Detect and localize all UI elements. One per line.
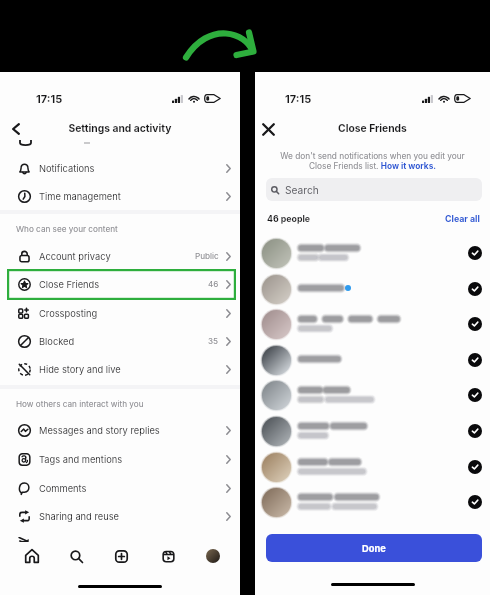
staticText: Time management	[39, 191, 121, 202]
button[interactable]: Home	[21, 545, 43, 567]
button[interactable]	[255, 449, 490, 485]
staticText: Public	[195, 251, 219, 261]
button[interactable]	[255, 377, 490, 413]
button[interactable]: Close Friends	[0, 270, 240, 298]
staticText: Who can see your content	[16, 224, 118, 234]
staticText: Messages and story replies	[39, 425, 160, 436]
button[interactable]: Done	[266, 534, 482, 562]
button[interactable]: Sharing and reuse	[0, 502, 240, 530]
staticText: 35	[208, 336, 219, 346]
button[interactable]: Messages and story replies	[0, 416, 240, 444]
staticText: Settings and activity	[0, 122, 240, 134]
staticText: 46	[208, 279, 219, 289]
button[interactable]: Reels	[157, 545, 179, 567]
button[interactable]: Close	[257, 118, 279, 140]
button[interactable]: Account privacy	[0, 242, 240, 270]
button[interactable]: Back	[4, 117, 27, 140]
staticText: Notifications	[39, 163, 95, 174]
button[interactable]: Tags and mentions	[0, 445, 240, 473]
button[interactable]	[255, 306, 490, 342]
button[interactable]: Create	[110, 545, 132, 567]
button[interactable]	[255, 413, 490, 449]
staticText: Done	[362, 543, 386, 554]
button[interactable]: Blocked	[0, 327, 240, 355]
button[interactable]	[255, 484, 490, 520]
staticText: Account privacy	[39, 251, 111, 262]
button[interactable]: Clear all	[445, 213, 480, 224]
button[interactable]: Crossposting	[0, 299, 240, 327]
staticText: Blocked	[39, 336, 75, 347]
staticText: 46 people	[267, 213, 311, 224]
button[interactable]: Time management	[0, 182, 240, 210]
staticText: How others can interact with you	[16, 399, 144, 409]
button[interactable]: Comments	[0, 474, 240, 502]
staticText: Close Friends	[255, 122, 490, 134]
staticText: Tags and mentions	[39, 454, 123, 465]
button[interactable]: Notifications	[0, 154, 240, 182]
button[interactable]: Hide story and live	[0, 355, 240, 383]
button[interactable]	[255, 342, 490, 378]
button[interactable]: Profile	[202, 545, 224, 567]
staticText: Sharing and reuse	[39, 511, 119, 522]
button[interactable]: Search	[65, 545, 87, 567]
button[interactable]: Search	[266, 178, 482, 201]
staticText: 17:15	[36, 92, 63, 105]
staticText: Crossposting	[39, 308, 98, 319]
staticText: We don't send notifications when you edi…	[274, 151, 471, 171]
button[interactable]	[255, 235, 490, 271]
staticText: 17:15	[285, 92, 312, 105]
staticText: Hide story and live	[39, 364, 121, 375]
staticText: Search	[285, 184, 319, 196]
staticText: Comments	[39, 483, 87, 494]
button[interactable]	[255, 271, 490, 307]
staticText: Close Friends	[39, 279, 100, 290]
